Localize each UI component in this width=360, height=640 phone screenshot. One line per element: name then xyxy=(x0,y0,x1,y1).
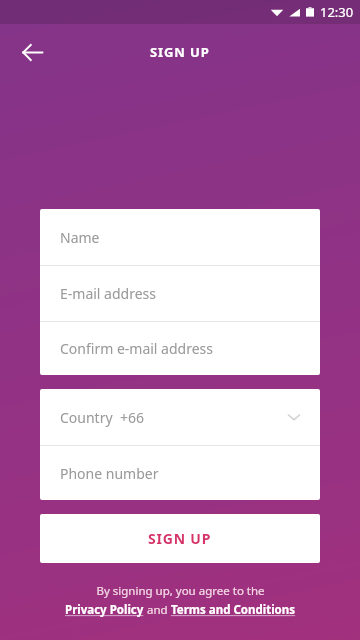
button[interactable]: Back xyxy=(10,30,54,74)
button[interactable]: E-mail address xyxy=(40,266,320,321)
button[interactable]: Name xyxy=(40,209,320,265)
staticText: Country +66 xyxy=(60,408,144,427)
button[interactable]: Phone number xyxy=(40,446,320,500)
button[interactable]: Country +66 xyxy=(40,389,320,445)
button[interactable]: Confirm e-mail address xyxy=(40,322,320,375)
staticText: Privacy Policy xyxy=(65,602,144,618)
staticText: Confirm e-mail address xyxy=(60,339,214,358)
button[interactable]: SIGN UP xyxy=(40,514,320,563)
staticText: E-mail address xyxy=(60,284,156,303)
staticText: 12:30 xyxy=(320,3,354,21)
button[interactable]: Privacy Policy xyxy=(65,602,144,618)
staticText: SIGN UP xyxy=(148,529,212,548)
staticText: and xyxy=(144,602,171,618)
staticText: Phone number xyxy=(60,464,159,483)
staticText: By signing up, you agree to the xyxy=(96,583,265,599)
staticText: Name xyxy=(60,228,100,247)
staticText: Terms and Conditions xyxy=(171,602,296,618)
button[interactable]: Terms and Conditions xyxy=(171,602,296,618)
staticText: SIGN UP xyxy=(150,43,210,61)
